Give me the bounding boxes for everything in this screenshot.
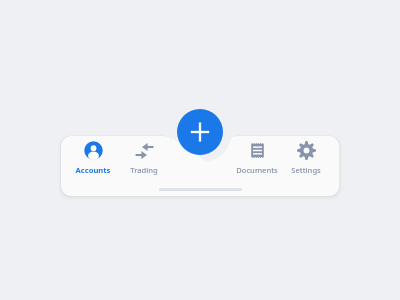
staticText: Documents (228, 165, 286, 175)
staticText: Settings (277, 165, 335, 175)
button[interactable]: Add (177, 109, 223, 155)
staticText: Accounts (64, 165, 122, 175)
button[interactable]: Accounts (64, 141, 122, 175)
staticText: Trading (115, 165, 173, 175)
button[interactable]: Settings (277, 141, 335, 175)
button[interactable]: Documents (228, 141, 286, 175)
button[interactable]: Trading (115, 141, 173, 175)
